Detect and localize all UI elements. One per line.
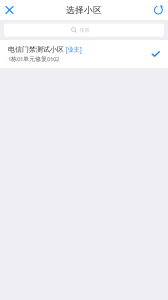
- button[interactable]: 搜索: [4, 23, 164, 36]
- staticText: 电信门禁测试小区: [8, 45, 64, 54]
- staticText: [业主]: [65, 45, 81, 54]
- staticText: 1栋01单元修复0102: [8, 55, 59, 63]
- button[interactable]: Close: [0, 0, 19, 20]
- button[interactable]: 电信门禁测试小区: [0, 40, 168, 68]
- button[interactable]: Refresh: [149, 0, 168, 20]
- staticText: 选择小区: [66, 4, 102, 15]
- staticText: 搜索: [79, 27, 89, 33]
